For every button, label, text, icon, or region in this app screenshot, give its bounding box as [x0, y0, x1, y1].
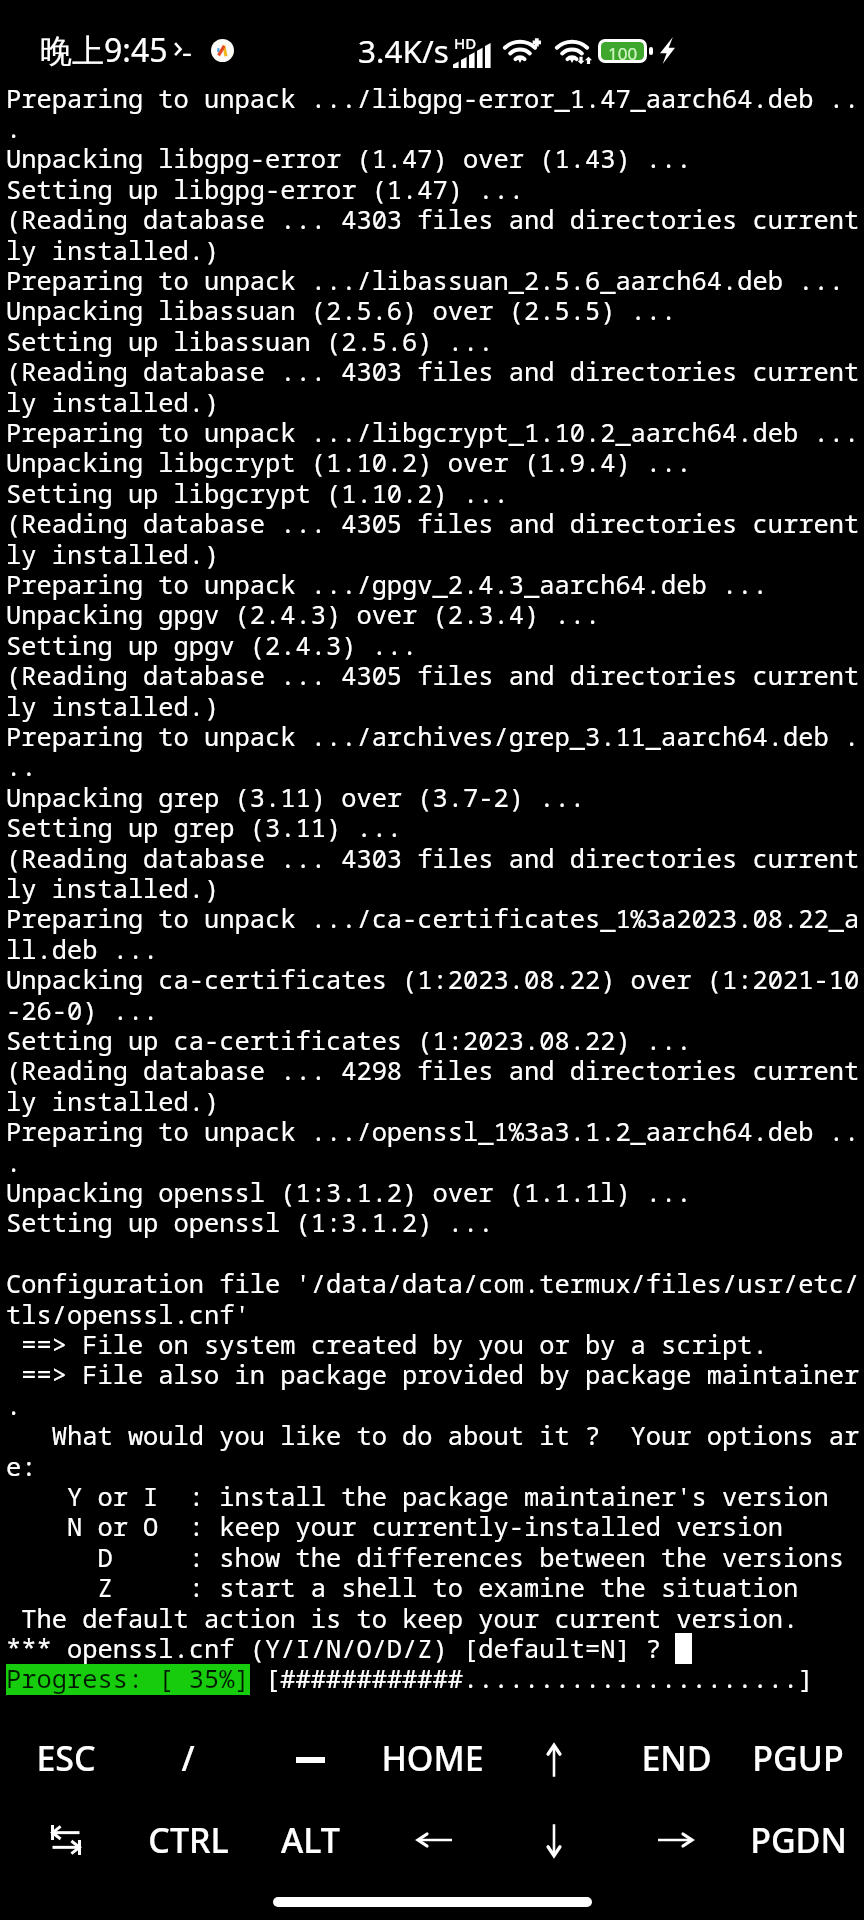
staticText: . [6, 1388, 22, 1423]
staticText: (Reading database ... 4305 files and dir… [6, 658, 860, 693]
staticText: .. [6, 749, 37, 784]
button[interactable]: Left [371, 1799, 493, 1881]
staticText: Z : start a shell to examine the situati… [6, 1570, 799, 1605]
button[interactable]: END [615, 1717, 737, 1799]
staticText: (Reading database ... 4298 files and dir… [6, 1053, 860, 1088]
staticText: ESC [36, 1735, 96, 1781]
staticText: What would you like to do about it ? You… [6, 1418, 860, 1453]
staticText: HOME [381, 1735, 484, 1781]
button[interactable]: Slash [127, 1717, 249, 1799]
button[interactable]: CTRL [127, 1799, 249, 1881]
staticText: Setting up openssl (1:3.1.2) ... [6, 1205, 494, 1240]
button[interactable]: Down [493, 1799, 615, 1881]
staticText: ==> File also in package provided by pac… [6, 1357, 860, 1392]
staticText: *** openssl.cnf (Y/I/N/O/D/Z) [default=N… [6, 1631, 677, 1666]
staticText: N or O : keep your currently-installed v… [6, 1509, 783, 1544]
staticText: . [6, 111, 22, 146]
staticText: ==> File on system created by you or by … [6, 1327, 768, 1362]
staticText: Setting up libgpg-error (1.47) ... [6, 172, 524, 207]
staticText: 3.4K/s [358, 29, 449, 72]
staticText: (Reading database ... 4303 files and dir… [6, 202, 860, 237]
button[interactable]: PGDN [737, 1799, 859, 1881]
button[interactable]: Terminal output [0, 0, 864, 1717]
staticText: PGUP [752, 1735, 844, 1781]
staticText: 100 [608, 42, 638, 60]
staticText: Preparing to unpack .../archives/grep_3.… [6, 719, 860, 754]
staticText: Setting up libassuan (2.5.6) ... [6, 324, 494, 359]
staticText: 晚上9:45 [40, 28, 168, 72]
button[interactable]: ALT [249, 1799, 371, 1881]
staticText: Unpacking libgcrypt (1.10.2) over (1.9.4… [6, 445, 692, 480]
staticText: Preparing to unpack .../gpgv_2.4.3_aarch… [6, 567, 768, 602]
staticText: (Reading database ... 4305 files and dir… [6, 506, 860, 541]
staticText: -26-0) ... [6, 993, 159, 1028]
staticText: ALT [281, 1817, 340, 1863]
staticText: Unpacking libgpg-error (1.47) over (1.43… [6, 141, 692, 176]
staticText: / [181, 1735, 195, 1781]
button[interactable]: PGUP [737, 1717, 859, 1799]
button[interactable]: HOME [371, 1717, 493, 1799]
staticText: Unpacking openssl (1:3.1.2) over (1.1.1l… [6, 1175, 692, 1210]
staticText: (Reading database ... 4303 files and dir… [6, 841, 860, 876]
staticText: PGDN [750, 1817, 847, 1863]
staticText: ly installed.) [6, 1084, 220, 1119]
staticText: Progress: [ 35%] [6, 1661, 250, 1696]
staticText: Preparing to unpack .../libassuan_2.5.6_… [6, 263, 844, 298]
staticText: ly installed.) [6, 689, 220, 724]
staticText: ly installed.) [6, 871, 220, 906]
button[interactable]: Right [615, 1799, 737, 1881]
staticText: [############......................] [265, 1661, 814, 1696]
staticText: Setting up ca-certificates (1:2023.08.22… [6, 1023, 692, 1058]
staticText: Setting up grep (3.11) ... [6, 810, 403, 845]
button[interactable]: Up [493, 1717, 615, 1799]
staticText: Unpacking gpgv (2.4.3) over (2.3.4) ... [6, 597, 601, 632]
staticText: (Reading database ... 4303 files and dir… [6, 354, 860, 389]
staticText: D : show the differences between the ver… [6, 1540, 844, 1575]
staticText: Setting up gpgv (2.4.3) ... [6, 628, 418, 663]
staticText: ly installed.) [6, 537, 220, 572]
staticText: Preparing to unpack .../libgcrypt_1.10.2… [6, 415, 860, 450]
staticText: ll.deb ... [6, 932, 159, 967]
staticText: Y or I : install the package maintainer'… [6, 1479, 829, 1514]
staticText: END [641, 1735, 712, 1781]
staticText: . [6, 1145, 22, 1180]
staticText: Preparing to unpack .../ca-certificates_… [6, 901, 860, 936]
staticText: Unpacking ca-certificates (1:2023.08.22)… [6, 962, 860, 997]
button[interactable]: ESC [5, 1717, 127, 1799]
staticText: ly installed.) [6, 233, 220, 268]
staticText: Preparing to unpack .../openssl_1%3a3.1.… [6, 1114, 860, 1149]
staticText: Unpacking libassuan (2.5.6) over (2.5.5)… [6, 293, 677, 328]
button[interactable]: Dash [249, 1717, 371, 1799]
staticText: tls/openssl.cnf' [6, 1297, 250, 1332]
staticText: Configuration file '/data/data/com.termu… [6, 1266, 860, 1301]
staticText: Setting up libgcrypt (1.10.2) ... [6, 476, 509, 511]
staticText: Preparing to unpack .../libgpg-error_1.4… [6, 81, 860, 116]
staticText: HD [454, 33, 477, 53]
staticText: CTRL [148, 1817, 229, 1863]
staticText: e: [6, 1449, 37, 1484]
button[interactable]: Tab [5, 1799, 127, 1881]
staticText: Unpacking grep (3.11) over (3.7-2) ... [6, 780, 585, 815]
staticText: ly installed.) [6, 385, 220, 420]
staticText: The default action is to keep your curre… [6, 1601, 799, 1636]
